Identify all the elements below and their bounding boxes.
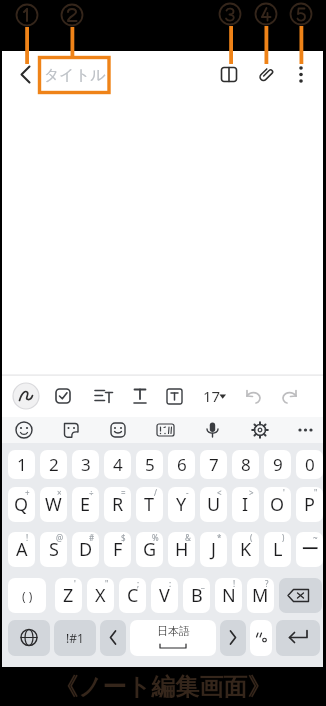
staticText: J: [211, 537, 216, 562]
button[interactable]: 5: [136, 450, 163, 479]
button[interactable]: G: [136, 532, 163, 567]
button[interactable]: !#1: [54, 620, 96, 656]
button[interactable]: [8, 620, 50, 656]
staticText: 7: [209, 453, 219, 476]
button[interactable]: [251, 60, 281, 90]
button[interactable]: I: [232, 487, 259, 522]
button[interactable]: [130, 620, 216, 656]
button[interactable]: 1: [8, 450, 35, 479]
button[interactable]: [196, 383, 232, 409]
button[interactable]: D: [72, 532, 99, 567]
staticText: タイトル: [44, 66, 106, 85]
staticText: S: [49, 537, 59, 562]
button[interactable]: B: [183, 578, 210, 613]
staticText: ー: [301, 538, 319, 561]
staticText: U: [207, 492, 221, 517]
staticText: 9: [273, 453, 283, 476]
staticText: 1: [17, 453, 27, 476]
button[interactable]: N: [215, 578, 242, 613]
staticText: O: [270, 492, 285, 517]
staticText: H: [175, 537, 189, 562]
button[interactable]: C: [119, 578, 146, 613]
button[interactable]: Y: [168, 487, 195, 522]
staticText: 《ノート編集画面》: [54, 672, 272, 702]
button[interactable]: 9: [264, 450, 291, 479]
button[interactable]: K: [232, 532, 259, 567]
staticText: E: [80, 492, 91, 517]
button[interactable]: 2: [40, 450, 67, 479]
staticText: <: [217, 487, 222, 498]
staticText: I: [242, 492, 249, 517]
button[interactable]: [292, 417, 320, 444]
staticText: ': [283, 487, 285, 498]
staticText: ÷: [89, 487, 94, 498]
button[interactable]: [250, 620, 272, 656]
button[interactable]: 4: [104, 450, 131, 479]
button[interactable]: [161, 383, 187, 409]
staticText: 4: [113, 453, 123, 476]
button[interactable]: J: [200, 532, 227, 567]
staticText: >: [249, 487, 254, 498]
button[interactable]: O: [264, 487, 291, 522]
button[interactable]: [198, 417, 226, 444]
staticText: B: [191, 583, 203, 608]
staticText: ': [74, 578, 76, 589]
button[interactable]: [104, 417, 132, 444]
button[interactable]: [151, 417, 179, 444]
button[interactable]: R: [104, 487, 131, 522]
staticText: ": [314, 487, 318, 498]
staticText: 2: [49, 453, 59, 476]
button[interactable]: F: [104, 532, 131, 567]
button[interactable]: M: [247, 578, 274, 613]
staticText: N: [222, 583, 236, 608]
button[interactable]: T: [136, 487, 163, 522]
staticText: T: [144, 492, 155, 517]
button[interactable]: [245, 417, 273, 444]
button[interactable]: 7: [200, 450, 227, 479]
button[interactable]: W: [40, 487, 67, 522]
button[interactable]: Z: [55, 578, 82, 613]
button[interactable]: A: [8, 532, 35, 567]
button[interactable]: X: [87, 578, 114, 613]
staticText: 3: [81, 453, 91, 476]
button[interactable]: [90, 383, 116, 409]
button[interactable]: [214, 60, 244, 90]
staticText: Y: [176, 492, 187, 517]
button[interactable]: H: [168, 532, 195, 567]
button[interactable]: ー: [296, 532, 323, 567]
button[interactable]: Q: [8, 487, 35, 522]
button[interactable]: [286, 60, 316, 90]
button[interactable]: [10, 59, 40, 89]
button[interactable]: L: [264, 532, 291, 567]
button[interactable]: V: [151, 578, 178, 613]
button[interactable]: 6: [168, 450, 195, 479]
staticText: !: [233, 578, 236, 589]
button[interactable]: ( ): [8, 578, 46, 613]
button[interactable]: E: [72, 487, 99, 522]
button[interactable]: [100, 620, 126, 656]
button[interactable]: 3: [72, 450, 99, 479]
button[interactable]: [50, 383, 76, 409]
button[interactable]: S: [40, 532, 67, 567]
button[interactable]: [127, 383, 153, 409]
button[interactable]: [240, 383, 266, 409]
staticText: $: [121, 532, 126, 543]
staticText: 0: [305, 453, 315, 476]
button[interactable]: P: [296, 487, 323, 522]
button[interactable]: [278, 383, 304, 409]
button[interactable]: [40, 58, 108, 92]
button[interactable]: [220, 620, 246, 656]
button[interactable]: [279, 578, 322, 613]
staticText: ×: [57, 487, 62, 498]
staticText: *: [217, 532, 222, 543]
button[interactable]: [276, 620, 320, 656]
button[interactable]: [57, 417, 85, 444]
button[interactable]: U: [200, 487, 227, 522]
button[interactable]: [10, 417, 38, 444]
button[interactable]: [13, 383, 39, 409]
staticText: M: [252, 583, 269, 608]
button[interactable]: 8: [232, 450, 259, 479]
staticText: ): [282, 532, 285, 543]
button[interactable]: 0: [296, 450, 323, 479]
staticText: (: [250, 532, 253, 543]
